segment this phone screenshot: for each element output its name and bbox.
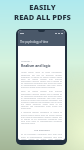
staticText: Lorem ipsum dolor sit amet consectetur a… <box>21 71 62 88</box>
staticText: ex ea commodo consequat duis aute irure … <box>21 133 62 140</box>
staticText: enim ad minim veniam quis nostrud exerci… <box>21 90 62 109</box>
staticText: Realism and logic <box>21 63 51 68</box>
staticText: READ ALL PDFS <box>14 12 71 22</box>
staticText: o eiusmod tempor incididunt ut labore et… <box>21 111 62 124</box>
staticText: EASILY <box>29 2 56 12</box>
staticText: The psychology of time <box>20 40 49 44</box>
staticText: The argument <box>34 128 50 131</box>
staticText: Chapter 1 <box>21 59 32 62</box>
